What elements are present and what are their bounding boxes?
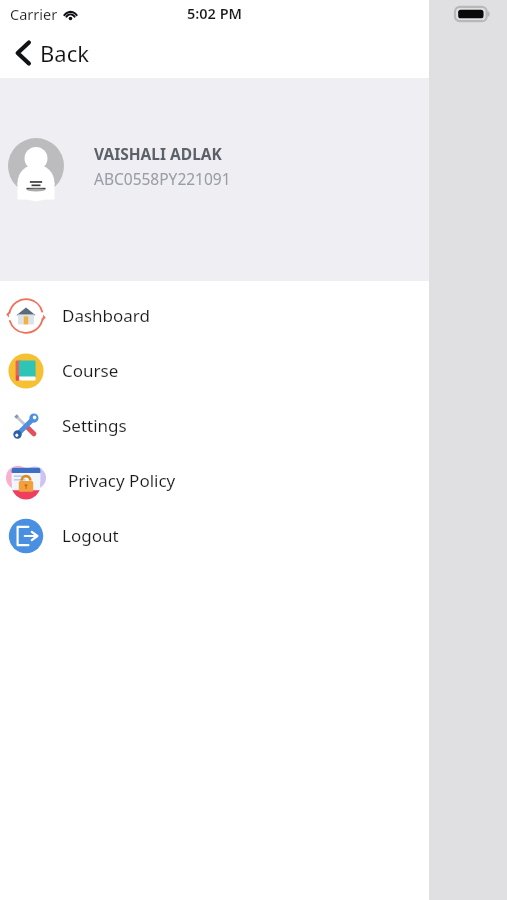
staticText: Carrier xyxy=(10,4,58,24)
button[interactable]: Privacy Policy xyxy=(0,453,429,508)
staticText: ABC0558PY221091 xyxy=(94,168,231,189)
button[interactable]: Course xyxy=(0,343,429,398)
staticText: Dashboard xyxy=(62,304,151,327)
button[interactable]: Back xyxy=(12,32,93,74)
staticText: 5:02 PM xyxy=(187,3,243,23)
button[interactable]: Dashboard xyxy=(0,288,429,343)
staticText: Settings xyxy=(62,414,127,437)
staticText: VAISHALI ADLAK xyxy=(94,143,222,164)
staticText: Privacy Policy xyxy=(68,469,176,492)
staticText: Course xyxy=(62,359,119,382)
button[interactable]: Settings xyxy=(0,398,429,453)
staticText: Logout xyxy=(62,524,119,547)
button[interactable]: Logout xyxy=(0,508,429,563)
staticText: Back xyxy=(40,38,89,68)
